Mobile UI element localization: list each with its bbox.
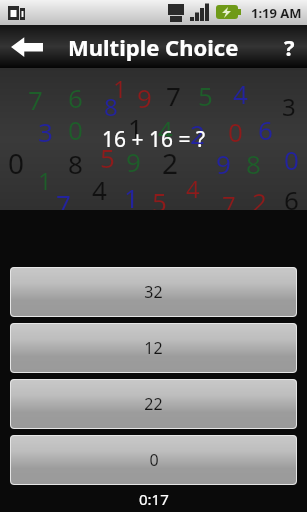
staticText: 0 <box>149 449 159 471</box>
staticText: 0 <box>8 144 25 182</box>
staticText: 8 <box>246 146 261 181</box>
staticText: 7 <box>222 188 236 210</box>
staticText: 7 <box>166 78 181 113</box>
staticText: 4 <box>186 172 200 205</box>
staticText: 0:17 <box>139 489 169 509</box>
staticText: 9 <box>216 146 231 181</box>
staticText: 4 <box>233 76 248 111</box>
staticText: 2 <box>252 184 267 210</box>
staticText: Multiple Choice <box>68 32 239 62</box>
staticText: 1 <box>128 110 143 145</box>
staticText: 7 <box>28 82 43 117</box>
staticText: 32 <box>144 281 163 303</box>
staticText: 4 <box>158 112 173 147</box>
staticText: 4 <box>92 172 107 207</box>
staticText: 9 <box>137 80 152 115</box>
staticText: 0 <box>228 114 243 149</box>
button[interactable]: 32 <box>10 267 297 317</box>
staticText: 6 <box>68 80 83 115</box>
button[interactable]: Help <box>271 25 307 68</box>
staticText: 1 <box>38 164 52 197</box>
staticText: 5 <box>100 140 115 175</box>
button[interactable]: 0 <box>10 435 297 485</box>
staticText: 3 <box>38 114 53 149</box>
staticText: 7 <box>56 186 71 210</box>
staticText: 0 <box>284 142 299 177</box>
staticText: 6 <box>284 182 299 210</box>
staticText: 5 <box>198 78 213 113</box>
staticText: 3 <box>282 90 296 123</box>
staticText: 9 <box>126 144 141 179</box>
button[interactable]: Back <box>0 25 54 68</box>
staticText: 5 <box>152 184 167 210</box>
staticText: 2 <box>162 144 179 182</box>
button[interactable]: 12 <box>10 323 297 373</box>
staticText: 16 + 16 = ? <box>102 125 206 154</box>
staticText: 6 <box>258 112 273 147</box>
staticText: ? <box>284 32 295 62</box>
staticText: 0 <box>68 112 83 147</box>
staticText: 2 <box>190 116 205 151</box>
staticText: 1:19 AM <box>251 4 302 22</box>
staticText: 8 <box>68 146 83 181</box>
staticText: 1 <box>113 72 127 105</box>
staticText: 1 <box>124 180 139 210</box>
staticText: 22 <box>144 393 163 415</box>
staticText: 8 <box>104 90 118 123</box>
button[interactable]: 22 <box>10 379 297 429</box>
staticText: 12 <box>144 337 163 359</box>
